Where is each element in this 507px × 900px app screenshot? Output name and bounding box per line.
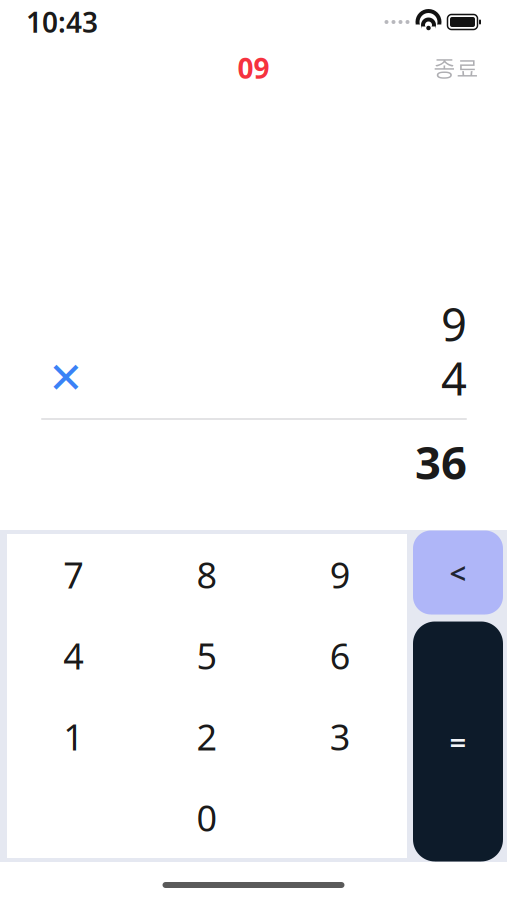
- staticText: 09: [237, 49, 269, 87]
- staticText: 9: [441, 294, 467, 354]
- button[interactable]: 종료: [419, 46, 493, 90]
- staticText: 4: [63, 632, 84, 679]
- button[interactable]: 6: [274, 615, 407, 696]
- staticText: 1: [63, 713, 84, 760]
- staticText: 8: [196, 551, 217, 598]
- button[interactable]: 5: [140, 615, 274, 696]
- staticText: 9: [330, 551, 351, 598]
- staticText: 5: [196, 632, 217, 679]
- staticText: 3: [330, 713, 351, 760]
- button[interactable]: Equals: [413, 621, 503, 861]
- staticText: 2: [196, 713, 217, 760]
- button[interactable]: 1: [7, 696, 140, 777]
- staticText: 6: [330, 632, 351, 679]
- staticText: 10:43: [26, 3, 98, 41]
- staticText: 0: [196, 794, 217, 841]
- staticText: <: [449, 553, 466, 592]
- button[interactable]: Backspace: [413, 530, 503, 614]
- staticText: 종료: [433, 54, 479, 82]
- button[interactable]: 7: [7, 534, 140, 615]
- button[interactable]: 0: [140, 777, 274, 858]
- button[interactable]: 3: [274, 696, 407, 777]
- staticText: 4: [441, 348, 467, 408]
- staticText: 7: [63, 551, 84, 598]
- button[interactable]: 2: [140, 696, 274, 777]
- button[interactable]: 8: [140, 534, 274, 615]
- button[interactable]: 4: [7, 615, 140, 696]
- staticText: ✕: [48, 354, 84, 402]
- staticText: =: [449, 722, 466, 761]
- staticText: 36: [415, 432, 467, 492]
- button[interactable]: 9: [274, 534, 407, 615]
